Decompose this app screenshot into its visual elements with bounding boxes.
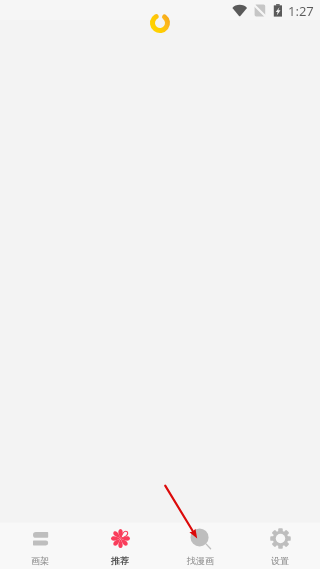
staticText: 1:27 xyxy=(288,2,314,20)
staticText: 设置 xyxy=(271,555,289,566)
button[interactable]: Bookshelf xyxy=(0,523,80,569)
staticText: 画架 xyxy=(31,555,49,566)
button[interactable]: Find comics xyxy=(160,523,240,569)
button[interactable]: Recommended xyxy=(80,523,160,569)
button[interactable]: Settings xyxy=(240,523,320,569)
staticText: 找漫画 xyxy=(187,555,214,566)
staticText: 推荐 xyxy=(111,555,129,566)
